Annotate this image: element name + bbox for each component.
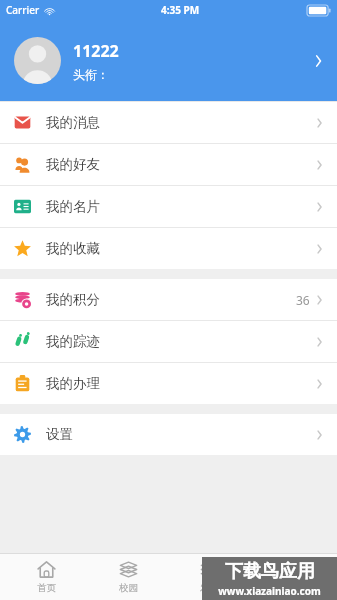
button[interactable]: 我的名片 bbox=[0, 186, 337, 228]
staticText: 校园 bbox=[119, 582, 138, 594]
button[interactable]: 设置 bbox=[0, 414, 337, 455]
button[interactable]: Discover bbox=[174, 554, 244, 600]
button[interactable]: 我的踪迹 bbox=[0, 321, 337, 363]
staticText: 我的消息 bbox=[46, 114, 100, 131]
staticText: www.xiazainiao.com bbox=[218, 584, 321, 598]
staticText: 我的积分 bbox=[46, 291, 100, 308]
button[interactable]: 11222 bbox=[0, 20, 337, 101]
staticText: 我的办理 bbox=[46, 375, 100, 392]
staticText: 我的名片 bbox=[46, 198, 100, 215]
button[interactable]: 我的好友 bbox=[0, 144, 337, 186]
staticText: 4:35 PM bbox=[161, 3, 200, 17]
staticText: 设置 bbox=[46, 426, 73, 443]
staticText: 11222 bbox=[73, 40, 119, 62]
staticText: 下载鸟应用 bbox=[225, 560, 315, 583]
button[interactable]: 我的办理 bbox=[0, 363, 337, 404]
staticText: 我的踪迹 bbox=[46, 333, 100, 350]
staticText: 36 bbox=[296, 292, 310, 308]
button[interactable]: 我的收藏 bbox=[0, 228, 337, 269]
staticText: 首页 bbox=[37, 582, 56, 594]
button[interactable]: Mine bbox=[256, 554, 326, 600]
button[interactable]: 我的消息 bbox=[0, 102, 337, 144]
staticText: 我的收藏 bbox=[46, 240, 100, 257]
button[interactable]: 我的积分 bbox=[0, 279, 337, 321]
staticText: Carrier bbox=[6, 3, 40, 17]
staticText: 头衔： bbox=[73, 67, 109, 82]
button[interactable]: Campus bbox=[93, 554, 163, 600]
staticText: 我的好友 bbox=[46, 156, 100, 173]
staticText: 我的 bbox=[282, 582, 301, 594]
staticText: 发现 bbox=[200, 582, 219, 594]
button[interactable]: Home bbox=[11, 554, 81, 600]
